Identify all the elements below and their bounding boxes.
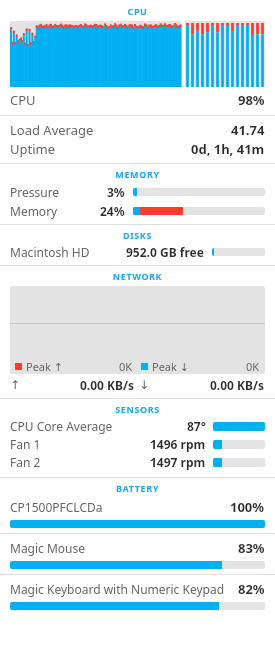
staticText: CP1500PFCLCDa (10, 499, 103, 515)
staticText: 0K (246, 359, 260, 374)
button[interactable]: Macintosh HD (10, 244, 265, 260)
button[interactable]: CPU Core Average (10, 418, 265, 434)
staticText: Peak ↓ (152, 359, 189, 374)
staticText: MEMORY (0, 168, 275, 180)
staticText: 100% (230, 498, 265, 516)
staticText: Load Average (10, 121, 94, 139)
button[interactable]: CP1500PFCLCDa (10, 498, 265, 533)
staticText: 0.00 KB/s (80, 377, 135, 393)
staticText: 1496 rpm (150, 436, 206, 452)
button[interactable]: Magic Keyboard with Numeric Keypad (10, 580, 265, 615)
staticText: 98% (238, 91, 265, 109)
staticText: 87° (187, 418, 206, 434)
staticText: 3% (107, 184, 125, 200)
staticText: SENSORS (0, 403, 275, 415)
staticText: NETWORK (0, 270, 275, 282)
staticText: 0K (119, 359, 133, 374)
button[interactable]: Fan 1 (10, 436, 265, 452)
staticText: 952.0 GB free (126, 244, 204, 260)
staticText: Peak ↑ (26, 359, 63, 374)
staticText: Magic Mouse (10, 540, 86, 556)
staticText: Fan 1 (10, 436, 41, 452)
staticText: Magic Keyboard with Numeric Keypad (10, 581, 225, 597)
staticText: ↑ (10, 378, 21, 392)
staticText: CPU Core Average (10, 418, 113, 434)
staticText: 0.00 KB/s (210, 377, 265, 393)
staticText: 0d, 1h, 41m (191, 140, 265, 158)
staticText: 1497 rpm (150, 454, 206, 470)
button[interactable]: Magic Mouse (10, 539, 265, 574)
staticText: BATTERY (0, 482, 275, 494)
staticText: CPU (0, 5, 275, 17)
staticText: ↓ (139, 378, 150, 392)
staticText: Uptime (10, 140, 56, 158)
staticText: 83% (238, 539, 265, 557)
staticText: Macintosh HD (10, 244, 90, 260)
staticText: Memory (10, 203, 58, 219)
staticText: DISKS (0, 229, 275, 241)
staticText: 24% (100, 203, 125, 219)
button[interactable]: Fan 2 (10, 454, 265, 470)
staticText: 41.74 (231, 121, 265, 139)
staticText: Fan 2 (10, 454, 41, 470)
staticText: 82% (238, 580, 265, 598)
staticText: CPU (10, 91, 36, 109)
staticText: Pressure (10, 184, 60, 200)
